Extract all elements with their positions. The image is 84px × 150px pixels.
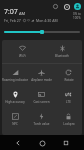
staticText: Rotate xyxy=(64,78,74,82)
button[interactable]: Bluetooth xyxy=(42,40,82,63)
button[interactable]: Rotate xyxy=(55,64,82,86)
staticText: 0% to xyxy=(73,12,81,16)
staticText: AM xyxy=(19,11,26,16)
staticText: Bluetooth xyxy=(55,54,69,58)
button[interactable]: Back xyxy=(12,137,24,149)
button[interactable]: Wi-Fi xyxy=(2,40,42,63)
button[interactable]: LTE xyxy=(55,86,82,108)
button[interactable]: Settings xyxy=(63,3,70,10)
button[interactable]: Airplane mode xyxy=(28,64,55,86)
staticText: Lockpro xyxy=(63,122,75,126)
staticText: Torch value xyxy=(33,122,50,126)
staticText: LTE xyxy=(66,100,71,104)
button[interactable]: User xyxy=(74,3,81,10)
staticText: Roaming indicator Off xyxy=(2,78,28,82)
button[interactable]: Recents xyxy=(60,137,72,149)
staticText: Cast screen xyxy=(33,100,50,104)
button[interactable]: Torch value xyxy=(28,108,55,130)
staticText: Airplane mode xyxy=(31,78,52,82)
staticText: High accuracy xyxy=(5,100,25,104)
staticText: Wi-Fi xyxy=(19,54,26,58)
staticText: Mon 4:30 AM xyxy=(36,18,58,23)
button[interactable]: Brightness xyxy=(0,24,84,40)
button[interactable]: Roaming indicator Off xyxy=(2,64,28,86)
staticText: Fri, Feb 27 xyxy=(4,18,21,23)
button[interactable]: Lockpro xyxy=(55,108,82,130)
button[interactable]: Cast screen xyxy=(28,86,55,108)
staticText: NFC xyxy=(12,122,18,126)
button[interactable]: High accuracy xyxy=(2,86,28,108)
button[interactable]: Battery saver xyxy=(52,3,59,10)
staticText: 7:07 xyxy=(4,7,18,17)
button[interactable]: NFC xyxy=(2,108,28,130)
staticText: 100% xyxy=(73,16,81,20)
button[interactable]: Home xyxy=(36,137,48,149)
